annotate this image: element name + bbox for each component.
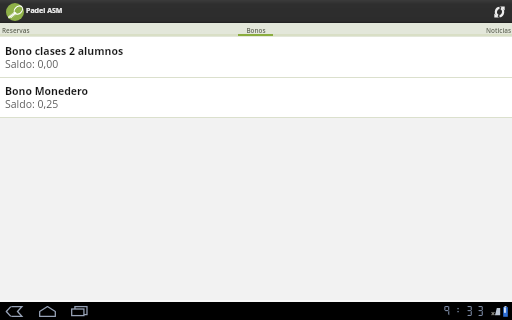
staticText: Noticias xyxy=(343,26,511,35)
button[interactable]: Bono Monedero xyxy=(0,78,512,118)
staticText: Padel ASM xyxy=(26,6,63,16)
staticText: Bono Monedero xyxy=(5,84,89,98)
staticText: Reservas xyxy=(2,26,169,35)
staticText: Saldo: 0,00 xyxy=(5,57,59,71)
button[interactable]: Home xyxy=(38,303,57,319)
staticText: Bono clases 2 alumnos xyxy=(5,44,124,58)
button[interactable]: Recent apps xyxy=(70,303,89,319)
button[interactable]: Reservas xyxy=(0,23,170,37)
button[interactable]: Bonos xyxy=(170,23,341,37)
button[interactable]: Bono clases 2 alumnos xyxy=(0,37,512,78)
staticText: 9:33 xyxy=(443,305,488,317)
button[interactable]: Noticias xyxy=(341,23,512,37)
staticText: Saldo: 0,25 xyxy=(5,97,59,111)
staticText: Bonos xyxy=(172,26,340,35)
button[interactable]: Refresh xyxy=(486,0,512,23)
button[interactable]: Back xyxy=(5,303,23,319)
